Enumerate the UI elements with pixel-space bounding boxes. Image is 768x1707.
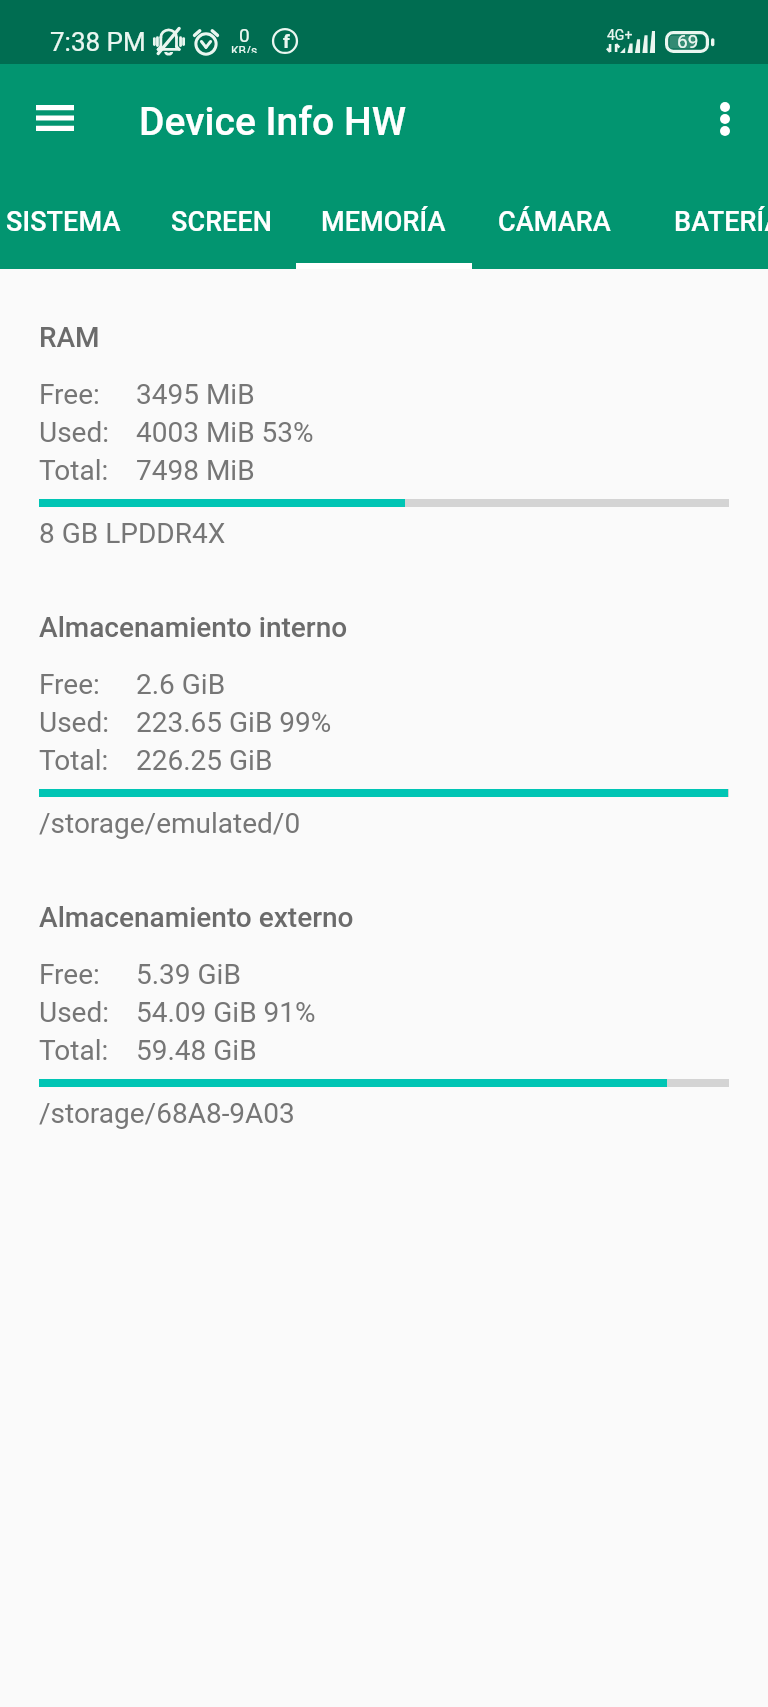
staticText: 59.48 GiB (136, 1034, 257, 1067)
staticText: KB/s (231, 44, 258, 53)
staticText: Almacenamiento interno (39, 611, 348, 644)
staticText: Free: (39, 668, 100, 701)
staticText: 8 GB LPDDR4X (39, 517, 226, 550)
button[interactable]: More options (689, 83, 761, 155)
staticText: f (283, 30, 290, 52)
staticText: SCREEN (171, 206, 273, 238)
staticText: 4G+ (607, 27, 633, 43)
staticText: Used: (39, 416, 110, 449)
staticText: Almacenamiento externo (39, 901, 354, 934)
staticText: Total: (39, 744, 109, 777)
staticText: /storage/emulated/0 (39, 807, 301, 840)
staticText: MEMORÍA (321, 206, 446, 238)
staticText: Used: (39, 996, 110, 1029)
button[interactable]: BATERÍA (638, 195, 768, 269)
staticText: RAM (39, 321, 100, 354)
staticText: 3495 MiB (136, 378, 255, 411)
staticText: Used: (39, 706, 110, 739)
staticText: /storage/68A8-9A03 (39, 1097, 295, 1130)
staticText: Device Info HW (139, 99, 407, 145)
staticText: 7:38 PM (50, 27, 146, 57)
staticText: Total: (39, 454, 109, 487)
button[interactable]: SISTEMA (0, 195, 176, 269)
staticText: 223.65 GiB 99% (136, 706, 332, 739)
staticText: 4003 MiB 53% (136, 416, 314, 449)
staticText: 226.25 GiB (136, 744, 273, 777)
button[interactable]: MEMORÍA (296, 195, 470, 269)
button[interactable]: CÁMARA (470, 195, 638, 269)
staticText: SISTEMA (6, 206, 121, 238)
staticText: BATERÍA (674, 206, 768, 238)
staticText: 54.09 GiB 91% (136, 996, 316, 1029)
staticText: 7498 MiB (136, 454, 255, 487)
staticText: 0 (239, 24, 250, 46)
staticText: 2.6 GiB (136, 668, 226, 701)
staticText: Total: (39, 1034, 109, 1067)
button[interactable]: Navigation menu (23, 86, 87, 150)
staticText: 69 (677, 30, 699, 52)
staticText: Free: (39, 958, 100, 991)
button[interactable]: SCREEN (146, 195, 298, 269)
staticText: 5.39 GiB (136, 958, 241, 991)
staticText: CÁMARA (498, 206, 611, 238)
staticText: Free: (39, 378, 100, 411)
